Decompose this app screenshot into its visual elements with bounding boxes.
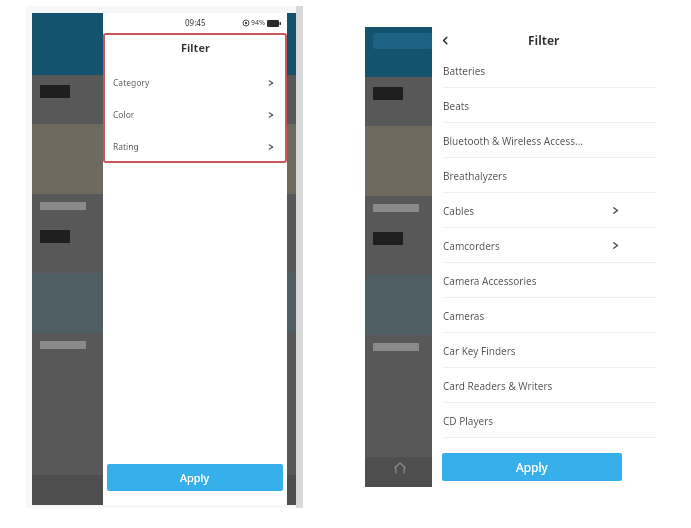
staticText: Apply <box>180 470 210 485</box>
staticText: Rating <box>113 141 139 153</box>
staticText: Category <box>113 77 150 89</box>
button[interactable]: Apply <box>107 464 283 491</box>
button[interactable]: Category <box>103 67 287 99</box>
staticText: Camera Accessories <box>443 274 537 288</box>
button[interactable]: Beats <box>432 88 656 123</box>
button[interactable]: Bluetooth & Wireless Access... <box>432 123 656 158</box>
staticText: 09:45 <box>185 17 206 28</box>
button[interactable]: Breathalyzers <box>432 158 656 193</box>
staticText: Card Readers & Writers <box>443 379 553 393</box>
button[interactable]: Color <box>103 99 287 131</box>
button[interactable]: Card Readers & Writers <box>432 368 656 403</box>
button[interactable]: Batteries <box>432 53 656 88</box>
button[interactable]: Apply <box>442 453 622 481</box>
button[interactable]: Back <box>432 27 458 53</box>
button[interactable]: Car Key Finders <box>432 333 656 368</box>
button[interactable]: Cables <box>432 193 656 228</box>
staticText: Cameras <box>443 309 485 323</box>
staticText: Bluetooth & Wireless Access... <box>443 134 584 148</box>
button[interactable]: Camera Accessories <box>432 263 656 298</box>
staticText: Apply <box>516 459 548 475</box>
staticText: Beats <box>443 99 470 113</box>
staticText: 94% <box>251 18 265 28</box>
staticText: Filter <box>528 32 560 48</box>
staticText: Batteries <box>443 64 486 78</box>
staticText: Car Key Finders <box>443 344 516 358</box>
staticText: Filter <box>181 40 210 55</box>
staticText: CD Players <box>443 414 494 428</box>
button[interactable]: Rating <box>103 131 287 163</box>
staticText: Breathalyzers <box>443 169 508 183</box>
button[interactable]: CD Players <box>432 403 656 438</box>
staticText: Color <box>113 109 135 121</box>
staticText: Cables <box>443 204 475 218</box>
button[interactable]: Camcorders <box>432 228 656 263</box>
button[interactable]: Cameras <box>432 298 656 333</box>
staticText: Camcorders <box>443 239 500 253</box>
